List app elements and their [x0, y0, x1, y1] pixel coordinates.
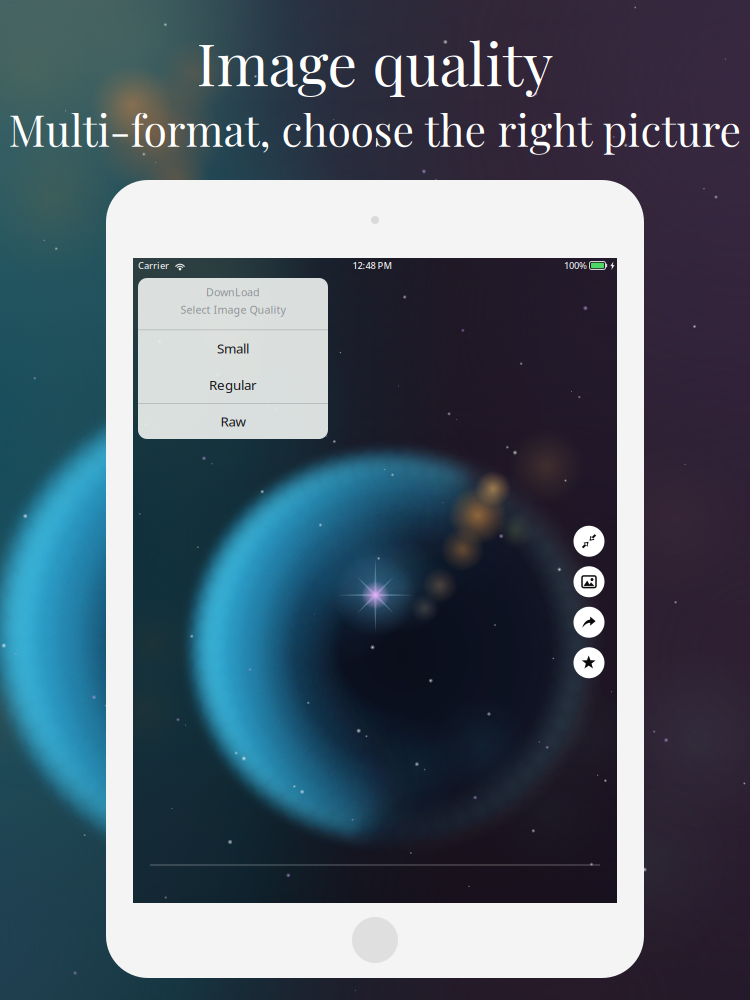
staticText: Carrier: [138, 259, 169, 272]
staticText: 12:48 PM: [352, 259, 392, 272]
button[interactable]: Raw: [138, 404, 328, 439]
staticText: Image quality: [196, 22, 553, 101]
staticText: Multi-format, choose the right picture: [8, 101, 741, 158]
button[interactable]: Photos: [573, 566, 604, 597]
staticText: Raw: [220, 412, 245, 430]
button[interactable]: Favourite: [573, 647, 604, 678]
button[interactable]: Share: [573, 607, 604, 638]
button[interactable]: Collapse: [573, 526, 604, 557]
staticText: 100%: [564, 259, 587, 272]
button[interactable]: Regular: [138, 367, 328, 403]
staticText: Small: [217, 339, 249, 357]
button[interactable]: Small: [138, 330, 328, 367]
staticText: Regular: [209, 376, 257, 394]
staticText: DownLoad: [206, 285, 260, 299]
staticText: Select Image Quality: [180, 302, 285, 317]
